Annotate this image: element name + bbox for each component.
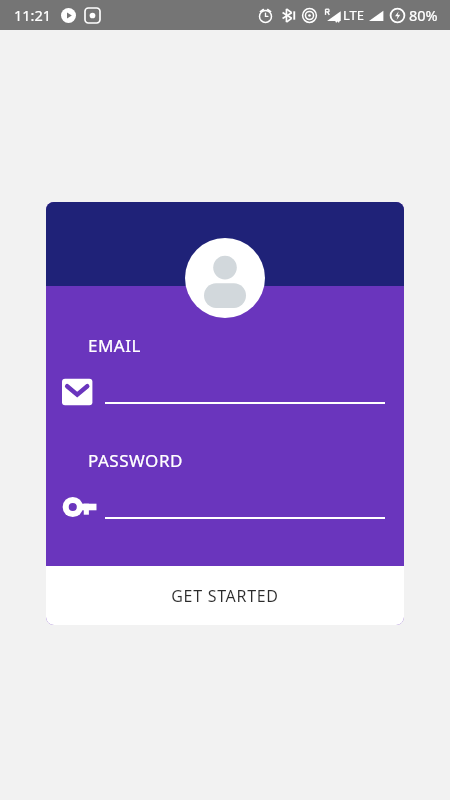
staticText: 80% [409, 5, 438, 25]
other: Email [62, 377, 94, 407]
staticText: EMAIL [88, 334, 141, 357]
staticText: LTE [343, 6, 365, 24]
button[interactable]: Email [62, 375, 385, 409]
button[interactable]: Password [62, 490, 385, 524]
button[interactable]: GET STARTED [46, 566, 404, 625]
staticText: 11:21 [14, 5, 52, 25]
staticText: GET STARTED [171, 585, 279, 607]
other: Password [62, 492, 94, 522]
staticText: PASSWORD [88, 449, 183, 472]
